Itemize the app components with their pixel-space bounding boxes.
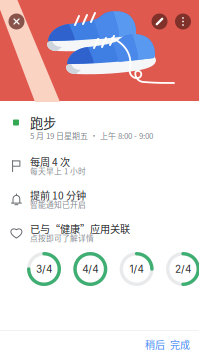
button[interactable]: 稍后 [138,330,172,355]
button[interactable]: Close [8,13,24,29]
button[interactable]: Edit [151,13,167,29]
button[interactable]: 每周 4 次 [0,149,199,182]
staticText: 4/4 [82,263,98,275]
staticText: 已与“健康”应用关联 [30,221,130,236]
staticText: 1/4 [130,263,144,275]
staticText: 稍后 [145,337,165,352]
staticText: 提前 10 分钟 [30,188,86,202]
button[interactable]: 完成 [163,330,197,355]
staticText: 完成 [170,337,190,352]
staticText: 跑步 [30,113,56,132]
button[interactable]: More options [175,13,191,29]
staticText: 2/4 [175,263,191,275]
staticText: 每周 4 次 [30,154,70,169]
staticText: 点按即可了解详情 [30,232,94,244]
staticText: 5 月 19 日星期五 · 上午 8:00 - 9:00 [30,130,153,141]
staticText: 智能通知已开启 [30,199,86,210]
button[interactable]: 已与“健康”应用关联 [0,216,199,249]
staticText: 每天早上 1 小时 [30,165,86,177]
button[interactable]: 提前 10 分钟 [0,183,199,216]
staticText: 3/4 [36,263,52,275]
